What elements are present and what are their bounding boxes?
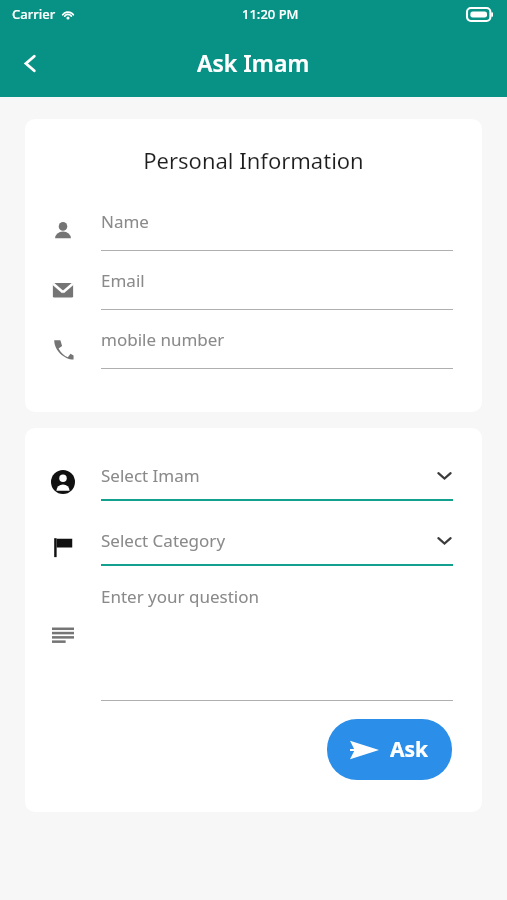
button[interactable]: mobile number bbox=[25, 319, 482, 378]
button[interactable]: Select Category bbox=[25, 523, 482, 571]
staticText: Carrier bbox=[12, 5, 56, 23]
staticText: Select Category bbox=[101, 529, 436, 552]
staticText: Enter your question bbox=[101, 585, 260, 608]
button[interactable]: Select Imam bbox=[25, 458, 482, 506]
staticText: mobile number bbox=[101, 328, 225, 351]
staticText: Personal Information bbox=[25, 145, 482, 175]
button[interactable]: Email bbox=[25, 260, 482, 319]
staticText: Ask Imam bbox=[197, 47, 310, 78]
staticText: Select Imam bbox=[101, 464, 436, 487]
staticText: 11:20 PM bbox=[242, 5, 299, 23]
button[interactable]: Back bbox=[10, 43, 50, 83]
button[interactable]: Ask bbox=[327, 719, 452, 780]
staticText: Email bbox=[101, 269, 145, 292]
button[interactable]: Name bbox=[25, 201, 482, 260]
staticText: Ask bbox=[390, 735, 429, 764]
staticText: Name bbox=[101, 210, 149, 233]
button[interactable]: Enter your question bbox=[25, 585, 482, 701]
